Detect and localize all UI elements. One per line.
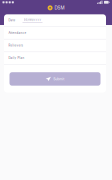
staticText: Date [8, 19, 15, 22]
staticText: Daily Plan [8, 56, 24, 60]
button[interactable]: Date [4, 14, 106, 26]
button[interactable]: Submit [9, 72, 100, 86]
staticText: Submit [53, 77, 64, 81]
button[interactable]: Daily Plan [4, 52, 106, 64]
staticText: dd/mm/yyyy [23, 18, 41, 21]
staticText: Relievers [8, 44, 22, 47]
staticText: Attendance [8, 31, 26, 35]
button[interactable]: Relievers [4, 39, 106, 51]
staticText: DSM [54, 5, 64, 11]
button[interactable]: Attendance [4, 27, 106, 39]
